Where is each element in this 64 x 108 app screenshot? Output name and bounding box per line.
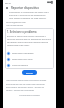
button[interactable]: Dispositivo sem sinal — [7, 56, 52, 62]
staticText: 1. Selecione o problema — [7, 30, 37, 34]
button[interactable]: Dispositivo danificado — [7, 50, 52, 56]
button[interactable]: Outro problema — [7, 62, 52, 68]
staticText: Enviar — [26, 71, 33, 74]
staticText: Dispositivo sem sinal — [12, 58, 33, 61]
staticText: Dispositivo danificado — [12, 52, 34, 55]
staticText: Nao compartilhado — [6, 24, 24, 27]
staticText: ●●▊ — [47, 1, 54, 4]
staticText: Formularios Google — [19, 94, 40, 97]
staticText: Nunca envie senhas pelo Formularios Goog… — [6, 79, 47, 82]
staticText: 09:41 — [5, 1, 12, 4]
staticText: Outro problema — [12, 64, 28, 67]
button[interactable]: Close — [3, 5, 11, 11]
staticText: usuario@gmail.com — [6, 21, 26, 24]
staticText: Escolha a opcao que melhor descreve a si… — [7, 35, 52, 47]
staticText: Reportar dispositivo — [11, 6, 39, 10]
button[interactable]: Enviar — [22, 70, 37, 75]
staticText: Este conteudo nao foi criado nem aprovad… — [6, 83, 48, 92]
staticText: Solicitamos a colaboracao de todos para … — [9, 11, 50, 20]
